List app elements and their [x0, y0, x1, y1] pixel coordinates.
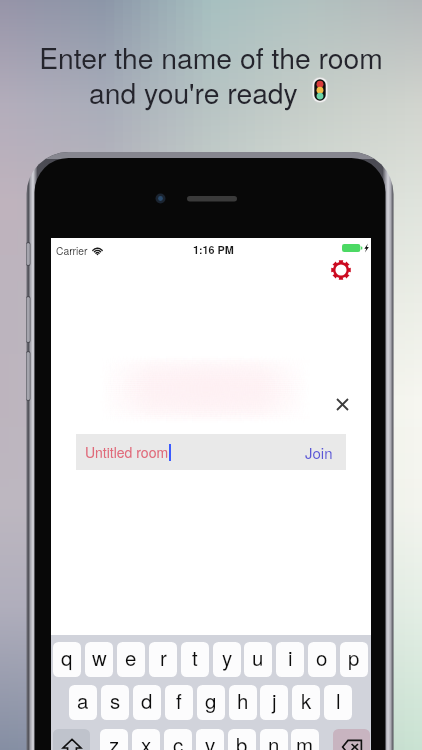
- staticText: r: [160, 642, 167, 671]
- button[interactable]: s: [101, 685, 129, 720]
- button[interactable]: q: [53, 642, 81, 677]
- button[interactable]: Shift: [53, 729, 90, 750]
- staticText: Enter the name of the room: [39, 37, 383, 78]
- staticText: v: [205, 729, 216, 750]
- staticText: l: [336, 685, 341, 714]
- staticText: t: [192, 642, 198, 671]
- button[interactable]: l: [324, 685, 352, 720]
- staticText: s: [110, 685, 121, 714]
- staticText: d: [141, 685, 153, 714]
- button[interactable]: k: [292, 685, 320, 720]
- button[interactable]: Settings: [325, 254, 357, 286]
- staticText: m: [296, 729, 314, 750]
- staticText: b: [236, 729, 248, 750]
- staticText: c: [173, 729, 184, 750]
- button[interactable]: x: [132, 729, 160, 750]
- button[interactable]: p: [340, 642, 368, 677]
- staticText: h: [237, 685, 249, 714]
- button[interactable]: o: [308, 642, 336, 677]
- staticText: e: [125, 642, 137, 671]
- button[interactable]: m: [291, 729, 319, 750]
- staticText: z: [109, 729, 120, 750]
- button[interactable]: h: [229, 685, 257, 720]
- button[interactable]: Join: [305, 442, 333, 463]
- staticText: k: [301, 685, 312, 714]
- staticText: Carrier: [56, 243, 88, 258]
- button[interactable]: n: [260, 729, 288, 750]
- staticText: q: [61, 642, 73, 671]
- button[interactable]: Untitled room: [76, 434, 346, 470]
- staticText: o: [316, 642, 328, 671]
- staticText: and you're ready: [89, 72, 298, 113]
- button[interactable]: z: [100, 729, 128, 750]
- staticText: j: [272, 685, 277, 714]
- button[interactable]: Close: [330, 392, 354, 416]
- button[interactable]: y: [213, 642, 241, 677]
- button[interactable]: r: [149, 642, 177, 677]
- button[interactable]: e: [117, 642, 145, 677]
- button[interactable]: t: [181, 642, 209, 677]
- staticText: Untitled room: [85, 442, 169, 462]
- staticText: x: [141, 729, 152, 750]
- button[interactable]: g: [197, 685, 225, 720]
- button[interactable]: Backspace: [333, 729, 370, 750]
- button[interactable]: v: [196, 729, 224, 750]
- staticText: Join: [305, 442, 333, 463]
- staticText: g: [205, 685, 217, 714]
- staticText: w: [92, 642, 107, 671]
- staticText: p: [348, 642, 360, 671]
- button[interactable]: w: [85, 642, 113, 677]
- staticText: n: [268, 729, 280, 750]
- staticText: a: [77, 685, 89, 714]
- button[interactable]: u: [244, 642, 272, 677]
- button[interactable]: i: [276, 642, 304, 677]
- button[interactable]: f: [165, 685, 193, 720]
- button[interactable]: j: [260, 685, 288, 720]
- staticText: 1:16 PM: [193, 242, 234, 257]
- staticText: f: [176, 685, 182, 714]
- staticText: i: [288, 642, 293, 671]
- button[interactable]: d: [133, 685, 161, 720]
- button[interactable]: b: [228, 729, 256, 750]
- button[interactable]: a: [69, 685, 97, 720]
- button[interactable]: c: [164, 729, 192, 750]
- staticText: u: [252, 642, 264, 671]
- staticText: y: [222, 642, 233, 671]
